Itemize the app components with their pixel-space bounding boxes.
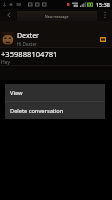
staticText: View [10, 89, 23, 97]
staticText: Hi Dexter [17, 41, 37, 47]
button[interactable]: Delete conversation [5, 102, 105, 119]
staticText: New message [45, 14, 69, 19]
staticText: Hey [1, 59, 10, 66]
button[interactable]: View [5, 84, 105, 101]
staticText: 15:38 [96, 1, 110, 8]
button[interactable]: Dexter [0, 31, 112, 47]
button[interactable]: More options [97, 9, 112, 21]
staticText: Delete conversation [10, 107, 64, 115]
staticText: +359888104781 [1, 49, 58, 59]
button[interactable]: Add contact [100, 37, 106, 42]
staticText: Dexter [17, 31, 39, 41]
button[interactable]: Navigate up [0, 9, 17, 21]
